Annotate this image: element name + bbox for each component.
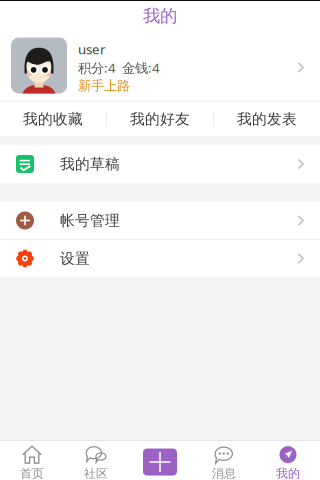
staticText: 我的收藏 [23,110,83,128]
staticText: 社区 [84,466,108,480]
staticText: 帐号管理 [60,211,120,229]
staticText: 设置 [60,249,90,267]
button[interactable]: 我的草稿 [0,145,320,183]
staticText: 新手上路 [78,77,130,94]
button[interactable]: 帐号管理 [0,202,320,239]
button[interactable]: 我的 [256,441,320,480]
staticText: 我的 [143,5,177,27]
staticText: user [78,40,106,58]
staticText: 我的好友 [130,110,190,128]
button[interactable]: 消息 [192,441,256,480]
staticText: 我的发表 [237,110,297,128]
button[interactable]: 我的收藏 [0,102,106,136]
button[interactable]: 设置 [0,240,320,277]
button[interactable]: 社区 [64,441,128,480]
staticText: 首页 [20,466,44,480]
button[interactable]: New post [128,441,192,480]
staticText: 积分:4 金钱:4 [78,59,160,76]
button[interactable]: 我的好友 [107,102,213,136]
staticText: 我的 [276,466,300,480]
button[interactable]: user [0,31,320,100]
button[interactable]: 我的发表 [214,102,320,136]
button[interactable]: 首页 [0,441,64,480]
staticText: 我的草稿 [60,155,120,173]
staticText: 消息 [212,466,236,480]
